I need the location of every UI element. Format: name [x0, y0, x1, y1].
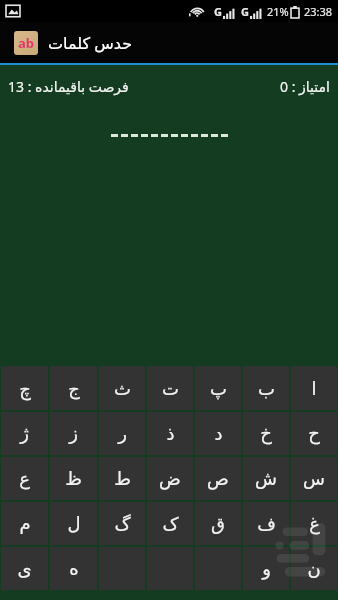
button[interactable]: م — [1, 502, 48, 545]
button[interactable]: ز — [50, 412, 97, 455]
button[interactable]: ل — [50, 502, 97, 545]
staticText: ن — [307, 558, 321, 579]
staticText: ق — [211, 513, 225, 534]
staticText: 23:38 — [304, 4, 333, 19]
button[interactable]: چ — [1, 366, 48, 410]
button[interactable]: ذ — [147, 412, 193, 455]
staticText: 21% — [267, 4, 289, 19]
staticText: و — [262, 558, 271, 579]
staticText: د — [214, 423, 223, 444]
button[interactable]: ی — [1, 547, 48, 590]
staticText: چ — [19, 378, 31, 399]
staticText: ص — [207, 468, 229, 489]
staticText: ا — [311, 378, 317, 399]
button[interactable]: غ — [291, 502, 337, 545]
button[interactable]: گ — [99, 502, 145, 545]
button[interactable]: ح — [291, 412, 337, 455]
button[interactable]: ا — [291, 366, 337, 410]
staticText: ر — [118, 423, 127, 444]
button[interactable]: خ — [243, 412, 289, 455]
staticText: م — [19, 513, 31, 534]
button[interactable]: ظ — [50, 457, 97, 500]
button[interactable]: ش — [243, 457, 289, 500]
button[interactable]: و — [243, 547, 289, 590]
button[interactable]: پ — [195, 366, 241, 410]
button[interactable]: ک — [147, 502, 193, 545]
staticText: گ — [114, 513, 131, 534]
button[interactable]: ف — [243, 502, 289, 545]
staticText: ز — [69, 423, 78, 444]
other: Watermark — [272, 520, 330, 582]
button[interactable]: ن — [291, 547, 337, 590]
staticText: غ — [309, 513, 320, 534]
button[interactable]: ق — [195, 502, 241, 545]
staticText: ح — [308, 423, 320, 444]
staticText: ج — [68, 378, 80, 399]
staticText: ل — [67, 513, 81, 534]
staticText: س — [303, 468, 325, 489]
staticText: ذ — [166, 423, 175, 444]
staticText: G — [241, 4, 249, 19]
button[interactable]: ژ — [1, 412, 48, 455]
staticText: ژ — [20, 423, 29, 444]
staticText: پ — [210, 378, 227, 399]
staticText: G — [214, 4, 222, 19]
button[interactable]: ث — [99, 366, 145, 410]
staticText: ت — [162, 378, 179, 399]
button[interactable]: ص — [195, 457, 241, 500]
staticText: ب — [258, 378, 275, 399]
button[interactable]: ت — [147, 366, 193, 410]
button[interactable]: ض — [147, 457, 193, 500]
button[interactable]: ه — [50, 547, 97, 590]
staticText: ab — [18, 34, 35, 52]
button[interactable]: ع — [1, 457, 48, 500]
staticText: ه — [69, 558, 79, 579]
staticText: ث — [114, 378, 131, 399]
button[interactable]: ط — [99, 457, 145, 500]
button[interactable]: ر — [99, 412, 145, 455]
staticText: ش — [255, 468, 277, 489]
staticText: ض — [159, 468, 181, 489]
button[interactable]: ج — [50, 366, 97, 410]
staticText: ک — [162, 513, 179, 534]
staticText: امتیاز : 0 — [280, 77, 330, 96]
staticText: ع — [19, 468, 30, 489]
staticText: حدس کلمات — [48, 32, 133, 54]
button[interactable]: س — [291, 457, 337, 500]
button[interactable]: د — [195, 412, 241, 455]
staticText: ظ — [65, 468, 82, 489]
staticText: فرصت باقیمانده : 13 — [8, 77, 129, 96]
staticText: خ — [260, 423, 272, 444]
staticText: ف — [257, 513, 276, 534]
button[interactable]: ب — [243, 366, 289, 410]
staticText: ط — [114, 468, 131, 489]
staticText: ی — [17, 558, 32, 579]
